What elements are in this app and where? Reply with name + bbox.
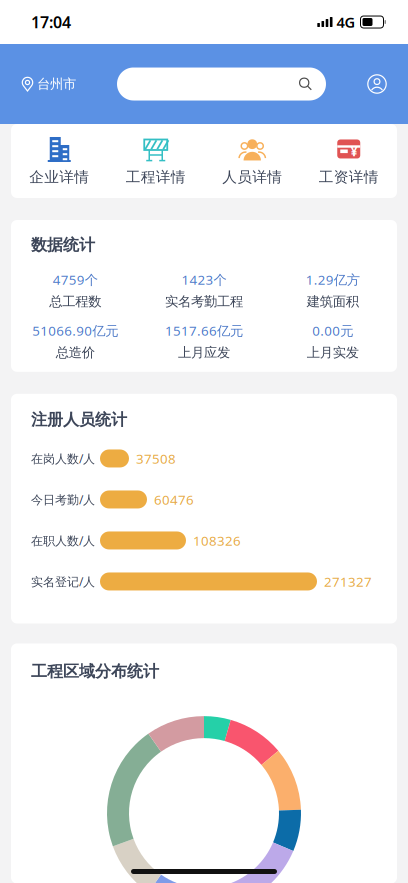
staticText: 今日考勤/人 bbox=[31, 491, 95, 507]
staticText: 上月实发 bbox=[307, 344, 359, 361]
staticText: 4G bbox=[336, 12, 355, 32]
button[interactable]: 人员详情 bbox=[204, 124, 300, 198]
staticText: 51066.90亿元 bbox=[32, 322, 118, 339]
staticText: 1517.66亿元 bbox=[165, 322, 243, 339]
staticText: 工程区域分布统计 bbox=[31, 661, 159, 681]
staticText: 实名登记/人 bbox=[31, 573, 95, 589]
staticText: 4759个 bbox=[53, 271, 98, 288]
staticText: 1423个 bbox=[181, 271, 226, 288]
button[interactable]: Account bbox=[367, 74, 387, 94]
staticText: ¥ bbox=[350, 142, 358, 160]
button[interactable]: ¥ bbox=[300, 124, 397, 198]
staticText: 271327 bbox=[324, 573, 372, 590]
staticText: 人员详情 bbox=[222, 168, 282, 186]
staticText: 108326 bbox=[193, 532, 241, 549]
staticText: 工程详情 bbox=[126, 168, 186, 186]
staticText: 37508 bbox=[136, 450, 176, 467]
staticText: 工资详情 bbox=[319, 168, 379, 186]
staticText: 1.29亿方 bbox=[306, 271, 360, 288]
staticText: 17:04 bbox=[31, 11, 71, 33]
staticText: 总工程数 bbox=[49, 293, 101, 310]
staticText: 实名考勤工程 bbox=[165, 293, 243, 310]
button[interactable]: Search bbox=[117, 67, 326, 100]
staticText: 注册人员统计 bbox=[31, 410, 127, 429]
staticText: 建筑面积 bbox=[307, 293, 359, 310]
button[interactable]: 企业详情 bbox=[11, 124, 107, 198]
staticText: 0.00元 bbox=[312, 322, 353, 339]
staticText: 在职人数/人 bbox=[31, 532, 95, 548]
staticText: 在岗人数/人 bbox=[31, 450, 95, 466]
staticText: 数据统计 bbox=[31, 235, 95, 255]
staticText: 60476 bbox=[154, 491, 194, 508]
staticText: 上月应发 bbox=[178, 344, 230, 361]
button[interactable]: 工程详情 bbox=[107, 124, 204, 198]
staticText: 台州市 bbox=[37, 76, 76, 92]
staticText: 企业详情 bbox=[29, 168, 89, 186]
button[interactable]: 台州市 bbox=[21, 64, 76, 104]
staticText: 总造价 bbox=[56, 344, 95, 361]
